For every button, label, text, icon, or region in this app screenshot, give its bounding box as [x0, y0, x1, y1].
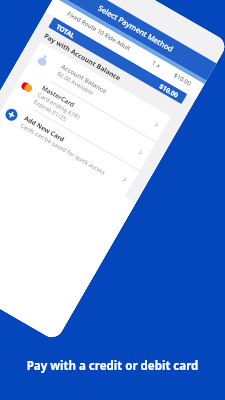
staticText: TOTAL [55, 22, 162, 89]
staticText: Pay with a credit or debit card [0, 358, 225, 374]
staticText: Add New Card [23, 113, 66, 144]
staticText: Select Payment Method [96, 3, 176, 54]
staticText: MasterCard [40, 83, 77, 109]
staticText: 1 x [151, 59, 162, 70]
staticText: $0.00 Available [55, 70, 95, 97]
staticText: Account Balance [59, 62, 109, 96]
staticText: $10.00 [172, 71, 193, 88]
staticText: Expires 01/25 [32, 98, 68, 123]
staticText: Card ending 6781 [36, 91, 83, 122]
staticText: Fixed Route 10 Ride Adult [66, 10, 155, 66]
button[interactable]: MasterCard [10, 68, 156, 170]
button[interactable]: Account Balance [26, 42, 171, 142]
button[interactable]: Add New Card [0, 96, 139, 196]
staticText: Cards can be saved for quick access [19, 121, 107, 177]
staticText: Pay with Account Balance [42, 31, 123, 83]
staticText: $10.00 [158, 82, 180, 100]
button[interactable]: Select Payment Method [56, 0, 217, 81]
